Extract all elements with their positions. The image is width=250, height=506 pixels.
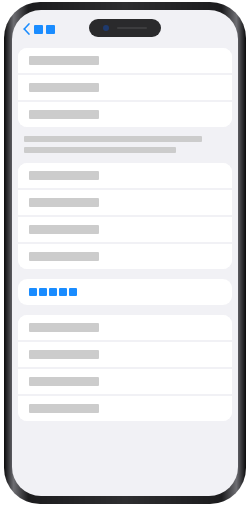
button[interactable] [18,102,232,127]
button[interactable] [18,48,232,73]
button[interactable] [18,396,232,421]
button[interactable] [18,217,232,242]
button[interactable] [18,163,232,188]
button[interactable]: Back [20,19,58,39]
button[interactable] [18,369,232,394]
button[interactable] [18,279,232,305]
button[interactable] [18,315,232,340]
button[interactable] [18,190,232,215]
button[interactable] [18,75,232,100]
button[interactable] [18,342,232,367]
button[interactable] [18,244,232,269]
